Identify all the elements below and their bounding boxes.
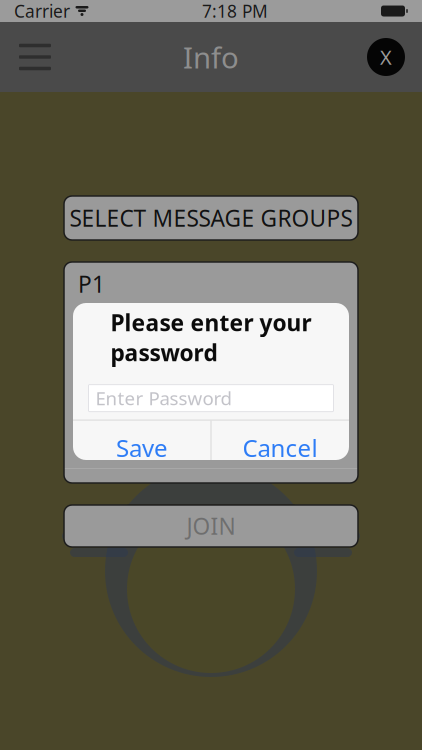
- button[interactable]: Cancel: [211, 421, 348, 475]
- staticText: X: [380, 44, 392, 70]
- staticText: Save: [116, 432, 168, 464]
- button[interactable]: SELECT MESSAGE GROUPS: [64, 196, 358, 240]
- staticText: Please enter your password: [110, 307, 311, 368]
- button[interactable]: Save: [73, 421, 210, 475]
- button[interactable]: JOIN: [64, 505, 358, 547]
- staticText: Cancel: [242, 432, 317, 464]
- staticText: P1: [78, 269, 105, 299]
- button[interactable]: Menu: [10, 35, 60, 79]
- staticText: JOIN: [186, 511, 235, 541]
- button[interactable]: Enter Password: [88, 385, 333, 412]
- staticText: Enter Password: [95, 386, 231, 410]
- staticText: Carrier: [14, 0, 70, 22]
- staticText: Info: [183, 37, 239, 76]
- button[interactable]: Close: [360, 31, 412, 83]
- staticText: 7:18 PM: [202, 0, 268, 22]
- staticText: SELECT MESSAGE GROUPS: [69, 203, 352, 233]
